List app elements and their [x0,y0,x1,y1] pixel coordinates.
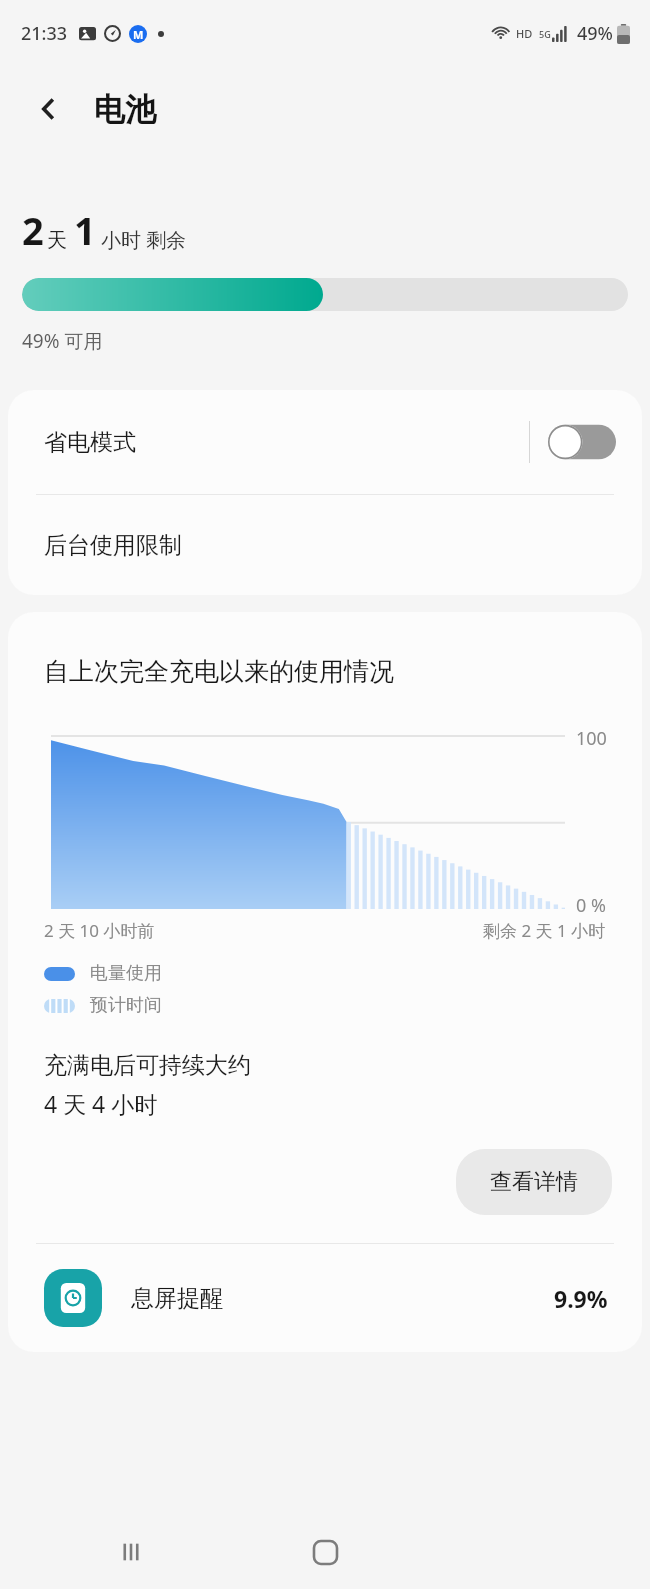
staticText: HD [516,26,533,41]
staticText: 9.9% [554,1283,608,1314]
staticText: 2 天 10 小时前 [44,919,155,942]
button[interactable]: Recents [104,1525,158,1579]
staticText: 49% 可用 [22,328,103,354]
staticText: 2 [22,204,44,256]
button[interactable]: Back [22,82,76,136]
staticText: 49% [577,21,613,46]
staticText: 省电模式 [44,428,529,457]
staticText: 自上次完全充电以来的使用情况 [44,656,394,687]
staticText: 天 [47,228,67,253]
button[interactable]: 后台使用限制 [8,495,642,595]
staticText: 电量使用 [90,962,162,985]
staticText: M [133,27,144,42]
staticText: 后台使用限制 [44,531,182,560]
staticText: 息屏提醒 [131,1284,223,1313]
staticText: 100 [576,726,607,751]
button[interactable]: 省电模式 [8,390,642,494]
staticText: 21:33 [21,21,68,46]
staticText: 0 % [576,893,606,918]
staticText: 充满电后可持续大约 [44,1051,251,1080]
staticText: 电池 [94,90,156,129]
staticText: 1 [74,204,96,256]
staticText: 预计时间 [90,994,162,1017]
button[interactable]: 查看详情 [456,1149,612,1215]
staticText: 查看详情 [490,1168,578,1196]
staticText: 剩余 2 天 1 小时 [483,919,606,942]
staticText: 5G [539,28,551,40]
button[interactable]: 息屏提醒 [8,1244,642,1352]
staticText: 小时 剩余 [101,226,187,253]
button[interactable]: 省电模式 switch [548,422,616,462]
button[interactable]: Home [298,1525,352,1579]
staticText: 4 天 4 小时 [44,1088,158,1119]
